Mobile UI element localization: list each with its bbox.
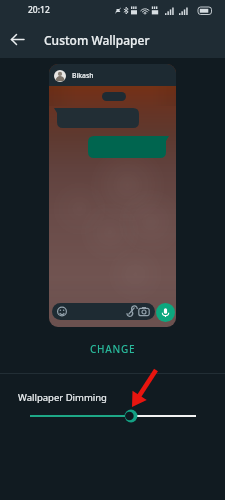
staticText: Custom Wallpaper [44, 32, 150, 48]
button[interactable]: CHANGE [76, 338, 150, 360]
staticText: 20:12 [28, 4, 50, 16]
button[interactable]: Wallpaper dimming slider [0, 406, 225, 428]
staticText: Bikash [72, 71, 94, 80]
button[interactable]: Back [2, 24, 32, 54]
button[interactable]: Type a message [52, 303, 155, 320]
button[interactable]: Voice message [156, 303, 175, 322]
staticText: CHANGE [90, 342, 136, 356]
staticText: Wallpaper Dimming [18, 391, 107, 404]
